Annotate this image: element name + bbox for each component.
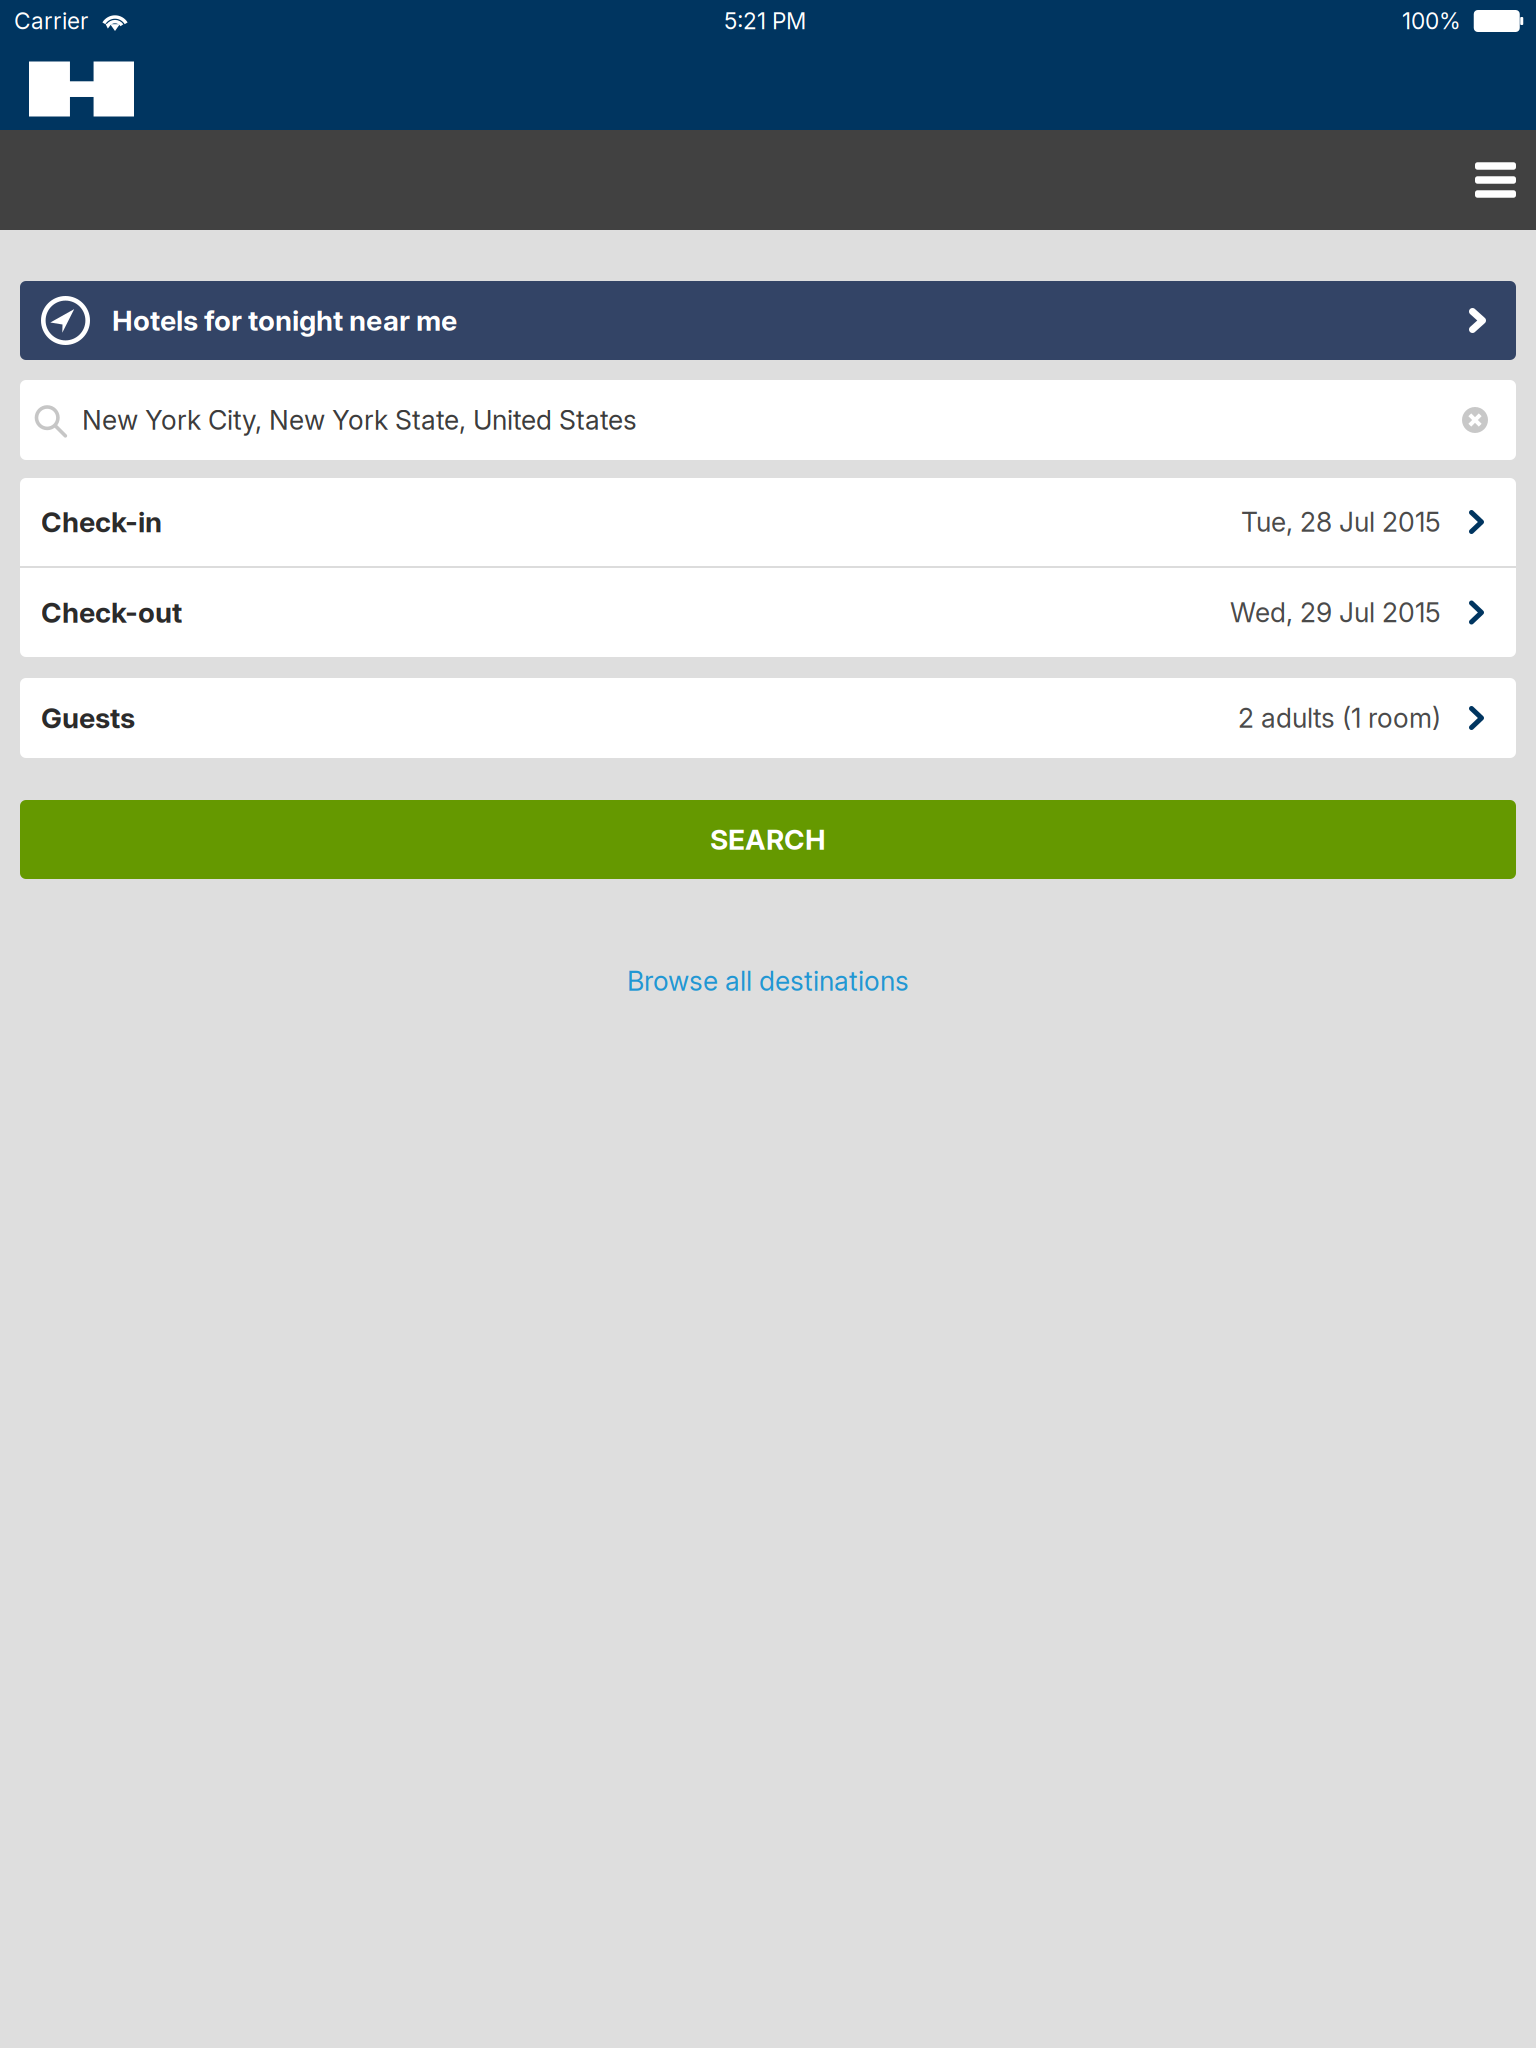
button[interactable]: Browse all destinations — [20, 944, 1516, 1018]
button[interactable]: Menu — [1475, 130, 1536, 229]
button[interactable]: SEARCH — [20, 800, 1516, 879]
staticText: SEARCH — [710, 823, 826, 856]
staticText: Browse all destinations — [627, 965, 909, 997]
staticText: Check-in — [41, 505, 162, 539]
staticText: Carrier — [14, 7, 88, 35]
staticText: Guests — [41, 701, 135, 735]
staticText: Check-out — [41, 596, 182, 629]
staticText: New York City, New York State, United St… — [82, 404, 637, 436]
button[interactable]: Hotels for tonight near me — [20, 281, 1516, 360]
button[interactable]: New York City, New York State, United St… — [20, 380, 1516, 460]
button[interactable]: Check-out — [20, 568, 1516, 657]
staticText: Hotels for tonight near me — [112, 304, 457, 337]
staticText: Tue, 28 Jul 2015 — [1241, 506, 1441, 538]
staticText: 2 adults (1 room) — [1238, 702, 1441, 734]
staticText: 5:21 PM — [724, 7, 806, 35]
staticText: Wed, 29 Jul 2015 — [1230, 596, 1441, 629]
staticText: 100% — [1402, 7, 1461, 35]
button[interactable]: Check-in — [20, 478, 1516, 566]
button[interactable]: Guests — [20, 678, 1516, 758]
